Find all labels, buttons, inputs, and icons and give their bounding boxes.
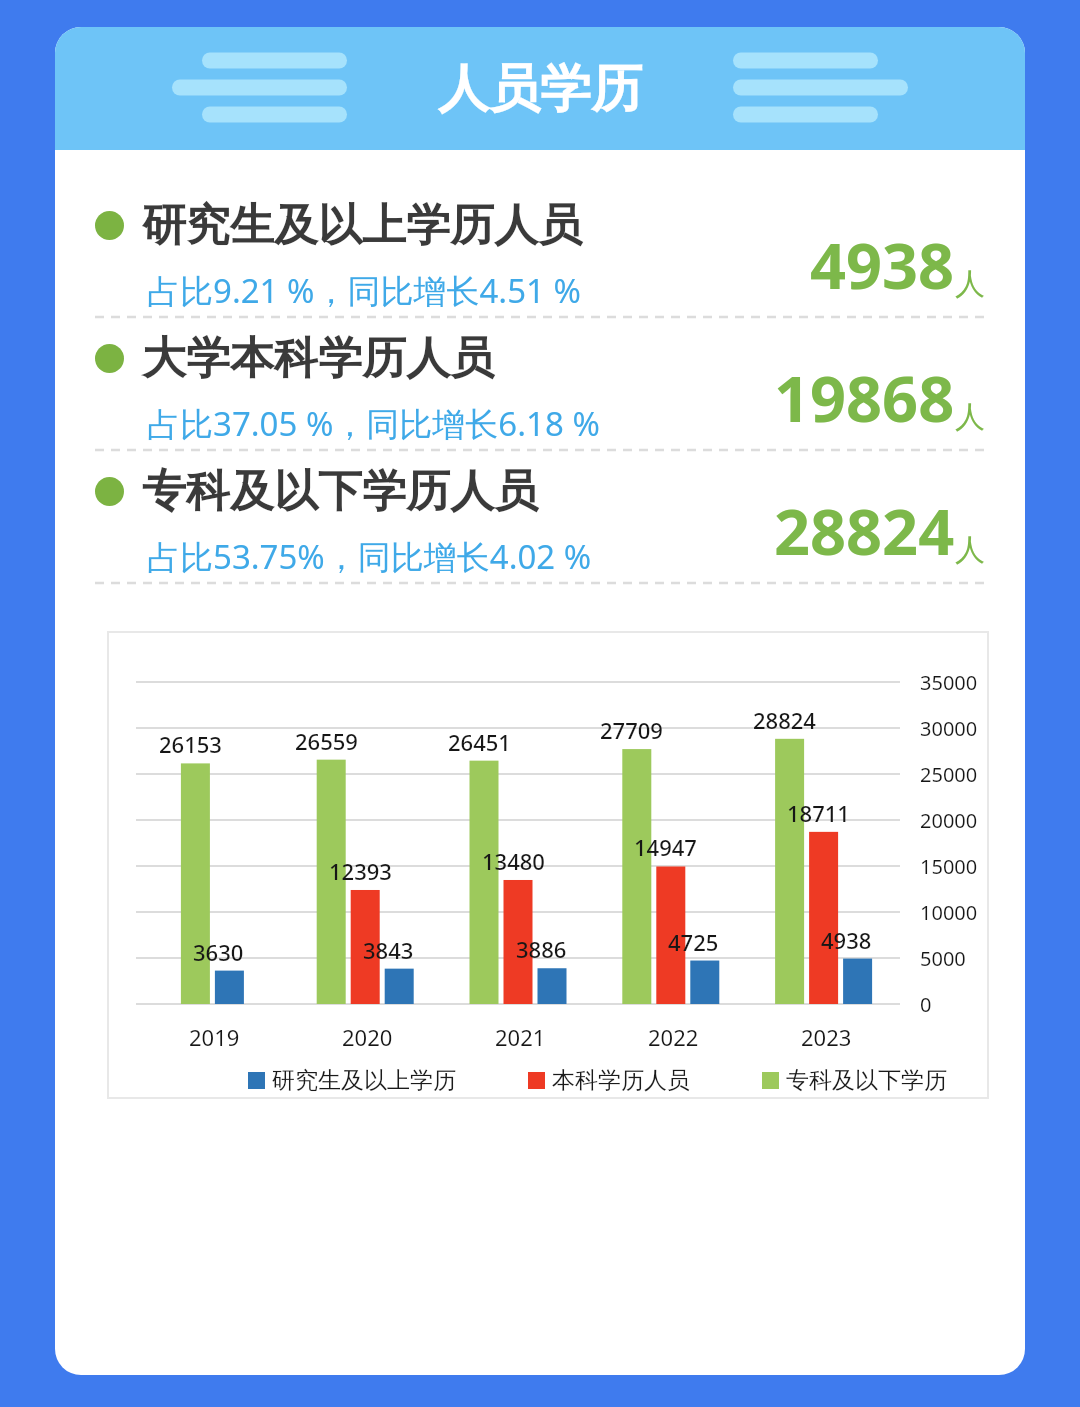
staticText: 4938 (810, 222, 955, 308)
staticText: 占比9.21 %，同比增长4.51 % (147, 268, 581, 313)
button[interactable]: 专科及以下学历 (762, 1066, 947, 1095)
staticText: 25000 (920, 761, 978, 788)
staticText: 14947 (634, 832, 697, 862)
staticText: 28824 (753, 705, 816, 735)
staticText: 2019 (189, 1022, 240, 1052)
staticText: 大学本科学历人员 (142, 331, 494, 386)
staticText: 13480 (482, 846, 545, 876)
staticText: 人 (955, 398, 985, 436)
staticText: 专科及以下学历人员 (142, 464, 538, 519)
staticText: 人 (955, 531, 985, 569)
button[interactable]: 研究生及以上学历人员 (95, 186, 985, 319)
staticText: 20000 (920, 807, 978, 834)
staticText: 28824 (774, 488, 955, 574)
staticText: 人 (955, 265, 985, 303)
staticText: 本科学历人员 (552, 1066, 690, 1095)
staticText: 0 (920, 991, 932, 1018)
button[interactable]: 专科及以下学历人员 (95, 452, 985, 585)
staticText: 19868 (774, 355, 955, 441)
button[interactable]: 大学本科学历人员 (95, 319, 985, 452)
staticText: 5000 (920, 945, 966, 972)
staticText: 27709 (600, 715, 663, 745)
staticText: 15000 (920, 853, 978, 880)
staticText: 18711 (787, 798, 850, 828)
button[interactable]: 研究生及以上学历 (248, 1066, 456, 1095)
button[interactable]: 本科学历人员 (528, 1066, 690, 1095)
staticText: 10000 (920, 899, 978, 926)
button[interactable]: 学历人数趋势柱状图 (108, 632, 988, 1098)
staticText: 26451 (448, 727, 511, 757)
staticText: 4938 (821, 925, 872, 955)
staticText: 2020 (342, 1022, 393, 1052)
staticText: 2022 (648, 1022, 699, 1052)
staticText: 占比53.75%，同比增长4.02 % (147, 534, 592, 579)
staticText: 研究生及以上学历人员 (142, 198, 582, 253)
button[interactable]: 人员学历 (55, 27, 1025, 150)
staticText: 3886 (516, 934, 567, 964)
staticText: 3843 (363, 935, 414, 965)
staticText: 2021 (495, 1022, 546, 1052)
staticText: 占比37.05 %，同比增长6.18 % (147, 401, 600, 446)
staticText: 12393 (329, 856, 392, 886)
staticText: 30000 (920, 715, 978, 742)
staticText: 4725 (668, 927, 719, 957)
staticText: 3630 (193, 937, 244, 967)
staticText: 35000 (920, 669, 978, 696)
staticText: 26559 (295, 726, 358, 756)
staticText: 研究生及以上学历 (272, 1066, 456, 1095)
staticText: 人员学历 (438, 57, 642, 121)
staticText: 专科及以下学历 (786, 1066, 947, 1095)
staticText: 26153 (159, 729, 222, 759)
staticText: 2023 (801, 1022, 852, 1052)
